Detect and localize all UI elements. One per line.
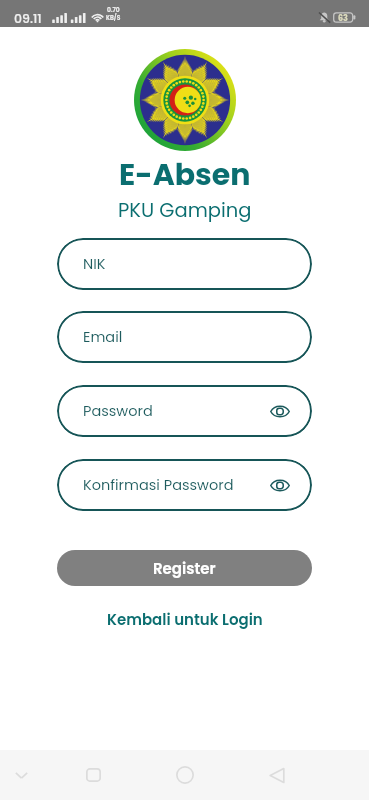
staticText: 09.11: [14, 10, 42, 27]
staticText: Password: [83, 401, 153, 421]
button[interactable]: Show password: [265, 396, 295, 426]
staticText: 63: [338, 13, 348, 24]
button[interactable]: Home: [169, 759, 201, 791]
staticText: Register: [153, 558, 216, 579]
staticText: Konfirmasi Password: [83, 475, 234, 495]
button[interactable]: Konfirmasi Password: [57, 459, 312, 511]
staticText: 0.70: [107, 6, 120, 14]
button[interactable]: Email: [57, 311, 312, 363]
button[interactable]: Back: [261, 759, 293, 791]
staticText: E-Absen: [119, 154, 251, 196]
button[interactable]: Show password: [265, 470, 295, 500]
button[interactable]: Register: [57, 550, 312, 586]
button[interactable]: Kembali untuk Login: [101, 606, 269, 633]
staticText: KB/S: [106, 14, 121, 22]
staticText: Email: [83, 327, 123, 347]
button[interactable]: Password: [57, 385, 312, 437]
button[interactable]: NIK: [57, 238, 312, 290]
staticText: PKU Gamping: [118, 197, 252, 224]
button[interactable]: Recents: [77, 759, 109, 791]
button[interactable]: Hide keyboard: [5, 759, 37, 791]
staticText: Kembali untuk Login: [107, 609, 263, 630]
staticText: NIK: [83, 254, 106, 274]
